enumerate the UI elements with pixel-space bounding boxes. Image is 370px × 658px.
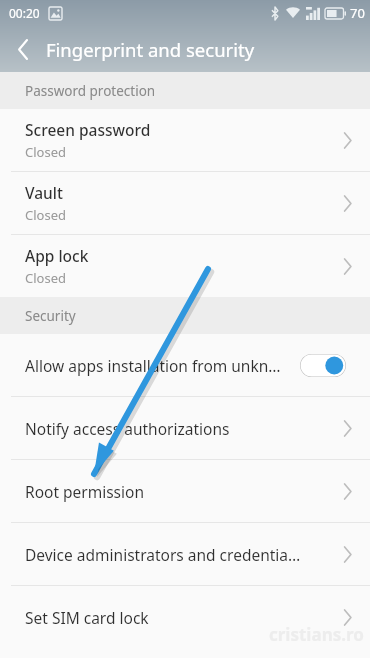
button[interactable]: Screen password <box>0 109 370 171</box>
staticText: Screen password <box>25 119 151 140</box>
staticText: Allow apps installation from unkn… <box>25 355 294 376</box>
staticText: Closed <box>25 143 66 161</box>
button[interactable]: Device administrators and credentia… <box>0 523 370 585</box>
button[interactable]: Notify access authorizations <box>0 397 370 459</box>
staticText: Fingerprint and security <box>46 37 255 62</box>
staticText: Set SIM card lock <box>25 607 343 628</box>
staticText: Password protection <box>25 82 156 100</box>
staticText: Notify access authorizations <box>25 418 343 439</box>
staticText: cristians.ro <box>269 623 364 646</box>
button[interactable]: Vault <box>0 172 370 234</box>
staticText: Vault <box>25 182 63 203</box>
staticText: Security <box>25 307 76 325</box>
button[interactable]: Allow apps installation toggle <box>300 354 346 377</box>
button[interactable]: Back <box>0 26 46 72</box>
button[interactable]: Allow apps installation from unkn… <box>0 334 370 396</box>
staticText: Device administrators and credentia… <box>25 544 343 565</box>
staticText: Root permission <box>25 481 343 502</box>
staticText: 70 <box>350 4 365 22</box>
staticText: Closed <box>25 269 66 287</box>
staticText: Closed <box>25 206 66 224</box>
staticText: App lock <box>25 245 89 266</box>
button[interactable]: Set SIM card lock <box>0 586 370 648</box>
staticText: 00:20 <box>9 5 40 21</box>
button[interactable]: App lock <box>0 235 370 297</box>
button[interactable]: Root permission <box>0 460 370 522</box>
